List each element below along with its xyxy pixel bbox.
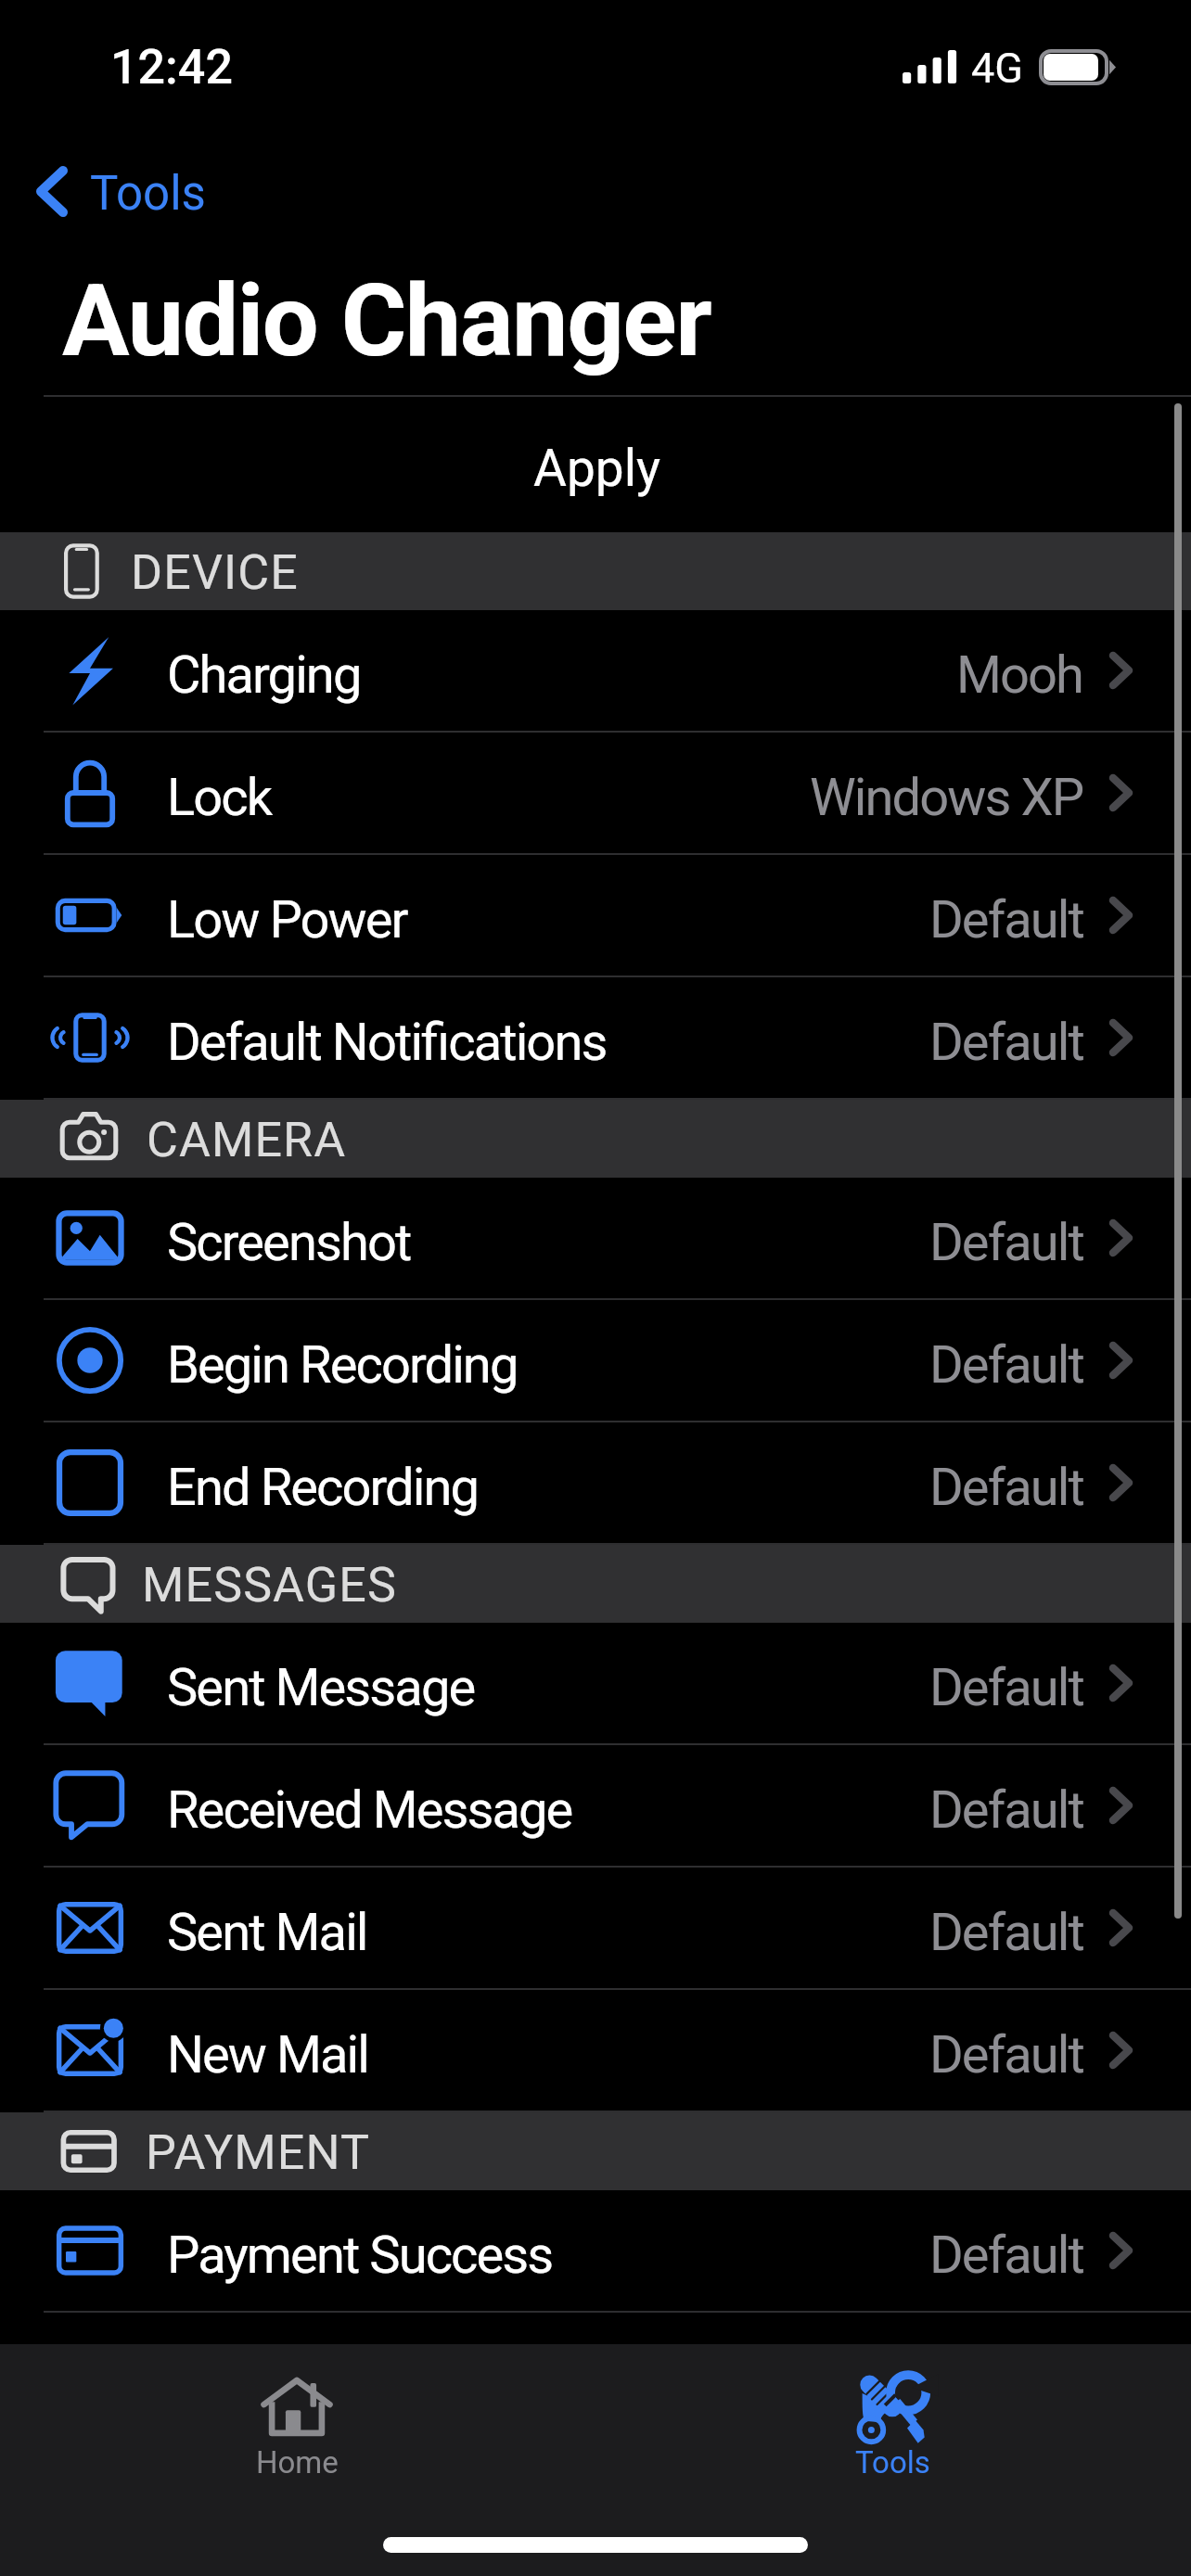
staticText: Default (929, 2225, 1083, 2286)
button[interactable]: Payment Success (0, 2190, 1191, 2313)
button[interactable]: Screenshot (0, 1178, 1191, 1300)
staticText: Default (929, 1012, 1083, 1073)
staticText: Mooh (956, 644, 1083, 706)
staticText: Tools (855, 2444, 930, 2480)
staticText: Default (929, 889, 1083, 950)
staticText: New Mail (167, 2024, 369, 2085)
staticText: Received Message (167, 1779, 572, 1841)
button[interactable]: Sent Mail (0, 1868, 1191, 1990)
button[interactable]: End Recording (0, 1422, 1191, 1545)
staticText: Sent Message (167, 1657, 475, 1718)
button[interactable]: Lock (0, 733, 1191, 855)
staticText: Default (929, 1212, 1083, 1273)
button[interactable]: Charging (0, 610, 1191, 733)
staticText: Begin Recording (167, 1334, 518, 1396)
staticText: MESSAGES (142, 1557, 397, 1613)
button[interactable]: Apply (0, 397, 1191, 532)
staticText: DEVICE (131, 544, 299, 601)
button[interactable]: New Mail (0, 1990, 1191, 2112)
staticText: Low Power (167, 889, 407, 950)
button[interactable]: Begin Recording (0, 1300, 1191, 1422)
staticText: Lock (167, 767, 272, 828)
staticText: 12:42 (110, 39, 233, 96)
staticText: Home (256, 2444, 339, 2480)
other: Back (36, 166, 71, 222)
button[interactable]: Received Message (0, 1745, 1191, 1868)
button[interactable]: Sent Message (0, 1623, 1191, 1745)
staticText: PAYMENT (146, 2124, 371, 2181)
staticText: Default (929, 2024, 1083, 2085)
staticText: Screenshot (167, 1212, 411, 1273)
staticText: Default Notifications (167, 1012, 607, 1073)
staticText: Default (929, 1779, 1083, 1841)
staticText: Default (929, 1334, 1083, 1396)
staticText: Charging (167, 644, 361, 706)
staticText: Sent Mail (167, 1902, 367, 1963)
staticText: 4G (971, 44, 1023, 93)
button[interactable]: Tools (827, 2372, 957, 2480)
staticText: CAMERA (147, 1112, 347, 1168)
staticText: Default (929, 1657, 1083, 1718)
button[interactable]: Home (232, 2372, 362, 2480)
staticText: Default (929, 1457, 1083, 1518)
button[interactable]: Low Power (0, 855, 1191, 977)
staticText: Payment Success (167, 2225, 553, 2286)
button[interactable]: Default Notifications (0, 977, 1191, 1100)
staticText: Tools (90, 166, 206, 222)
staticText: End Recording (167, 1457, 479, 1518)
staticText: Default (929, 1902, 1083, 1963)
staticText: Audio Changer (62, 262, 711, 380)
staticText: Windows XP (810, 767, 1083, 828)
button[interactable]: Back (0, 130, 1191, 239)
staticText: Apply (533, 439, 661, 498)
